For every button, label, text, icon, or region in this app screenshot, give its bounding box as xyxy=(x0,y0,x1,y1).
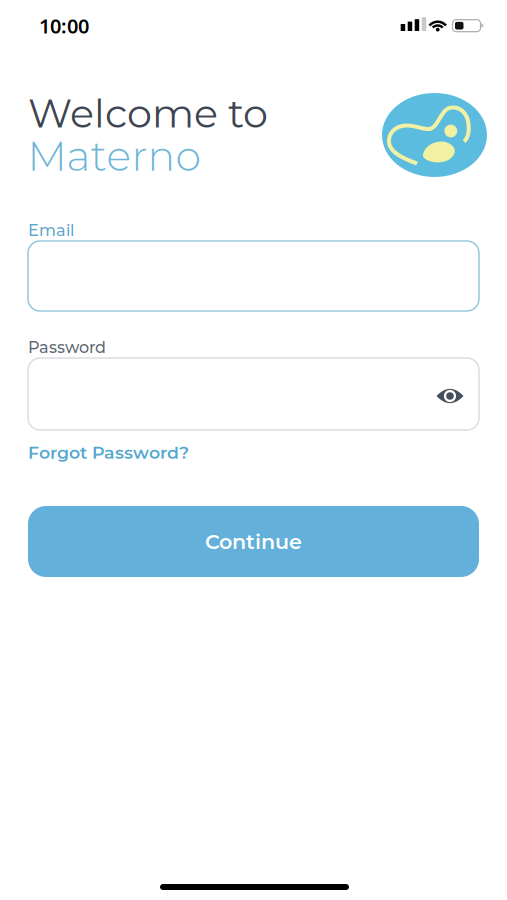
staticText: Welcome to xyxy=(28,89,268,137)
staticText: Forgot Password? xyxy=(28,442,189,463)
button[interactable]: Forgot Password? xyxy=(28,442,189,463)
button[interactable]: Password xyxy=(28,358,479,430)
staticText: Materno xyxy=(27,131,200,181)
staticText: 10:00 xyxy=(39,12,89,39)
button[interactable]: Show password xyxy=(433,383,467,409)
staticText: Email xyxy=(28,220,74,240)
staticText: Password xyxy=(28,338,106,357)
button[interactable]: Email xyxy=(28,241,479,311)
button[interactable]: Continue xyxy=(28,506,479,577)
staticText: Continue xyxy=(205,529,302,554)
